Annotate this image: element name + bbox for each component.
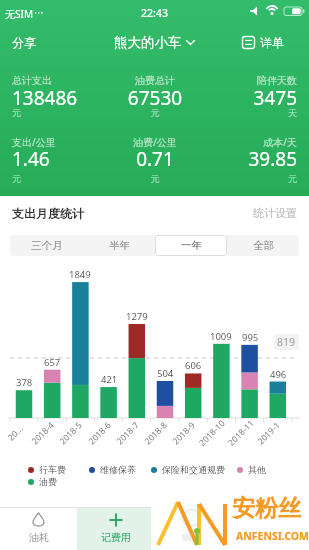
- staticText: 总计支出: [12, 74, 112, 87]
- staticText: 2018-6: [86, 419, 114, 447]
- button[interactable]: 记费用: [77, 508, 155, 550]
- staticText: 20...: [5, 423, 26, 443]
- staticText: 分享: [12, 35, 36, 50]
- staticText: 油费/公里: [105, 135, 205, 149]
- staticText: 995: [242, 331, 259, 344]
- button[interactable]: 一年: [155, 235, 227, 256]
- staticText: 保险和交通规费: [162, 464, 225, 475]
- staticText: 0.71: [105, 146, 205, 172]
- staticText: 统计设置: [253, 206, 297, 220]
- staticText: 138486: [12, 85, 112, 111]
- staticText: 3475: [197, 85, 297, 111]
- staticText: 1009: [210, 330, 232, 343]
- staticText: 支出月度统计: [12, 206, 84, 221]
- staticText: 天: [197, 107, 297, 118]
- button[interactable]: 分享: [0, 30, 60, 54]
- staticText: 2018-10: [196, 417, 227, 448]
- staticText: 496: [270, 368, 287, 381]
- staticText: 元: [12, 107, 112, 118]
- staticText: 2018-5: [57, 419, 85, 447]
- staticText: 2018-4: [29, 419, 57, 447]
- button[interactable]: 半年: [83, 235, 155, 256]
- staticText: 1279: [126, 310, 148, 323]
- staticText: 819: [277, 335, 296, 349]
- staticText: 元: [105, 173, 205, 184]
- staticText: 1849: [69, 268, 91, 281]
- staticText: 三个月: [31, 239, 63, 252]
- staticText: 全部: [253, 239, 274, 252]
- staticText: 成本/天: [197, 135, 297, 149]
- staticText: 油耗: [29, 531, 49, 544]
- staticText: 支出/公里: [12, 135, 112, 149]
- button[interactable]: 统计设置: [237, 204, 297, 222]
- staticText: 504: [157, 367, 174, 380]
- button[interactable]: 全部: [227, 235, 299, 256]
- staticText: 半年: [109, 239, 130, 252]
- staticText: 1.46: [12, 146, 112, 172]
- staticText: 油费: [39, 476, 57, 487]
- staticText: 39.85: [197, 146, 297, 172]
- staticText: 无SIM: [5, 7, 33, 21]
- staticText: ANFENSI.COM: [236, 529, 309, 543]
- staticText: 维修保养: [100, 464, 136, 475]
- staticText: 2018-8: [142, 419, 170, 447]
- staticText: 22:43: [0, 6, 309, 20]
- staticText: 421: [101, 373, 118, 386]
- staticText: 2018-7: [114, 419, 142, 447]
- staticText: 2018-9: [170, 419, 198, 447]
- staticText: 陪伴天数: [197, 74, 297, 87]
- staticText: 行车费: [39, 464, 66, 475]
- staticText: 378: [16, 376, 33, 389]
- staticText: 2018-11: [225, 417, 256, 448]
- staticText: 其他: [248, 464, 266, 475]
- button[interactable]: 详单: [242, 30, 309, 54]
- staticText: 油费总计: [105, 74, 205, 87]
- staticText: ⋯: [34, 7, 44, 19]
- staticText: 元: [12, 173, 112, 184]
- staticText: 2019-1: [255, 419, 283, 447]
- staticText: 记费用: [101, 531, 131, 544]
- staticText: 元: [105, 107, 205, 118]
- staticText: 657: [44, 356, 61, 369]
- staticText: 67530: [105, 85, 205, 111]
- button[interactable]: 三个月: [10, 235, 83, 256]
- staticText: 安粉丝: [232, 494, 301, 523]
- button[interactable]: 熊大的小车: [114, 30, 195, 54]
- staticText: 元: [197, 173, 297, 184]
- staticText: 一年: [181, 239, 202, 252]
- staticText: 熊大的小车: [114, 34, 182, 51]
- staticText: 606: [185, 359, 202, 372]
- button[interactable]: 油耗: [0, 508, 77, 550]
- staticText: 详单: [260, 35, 284, 50]
